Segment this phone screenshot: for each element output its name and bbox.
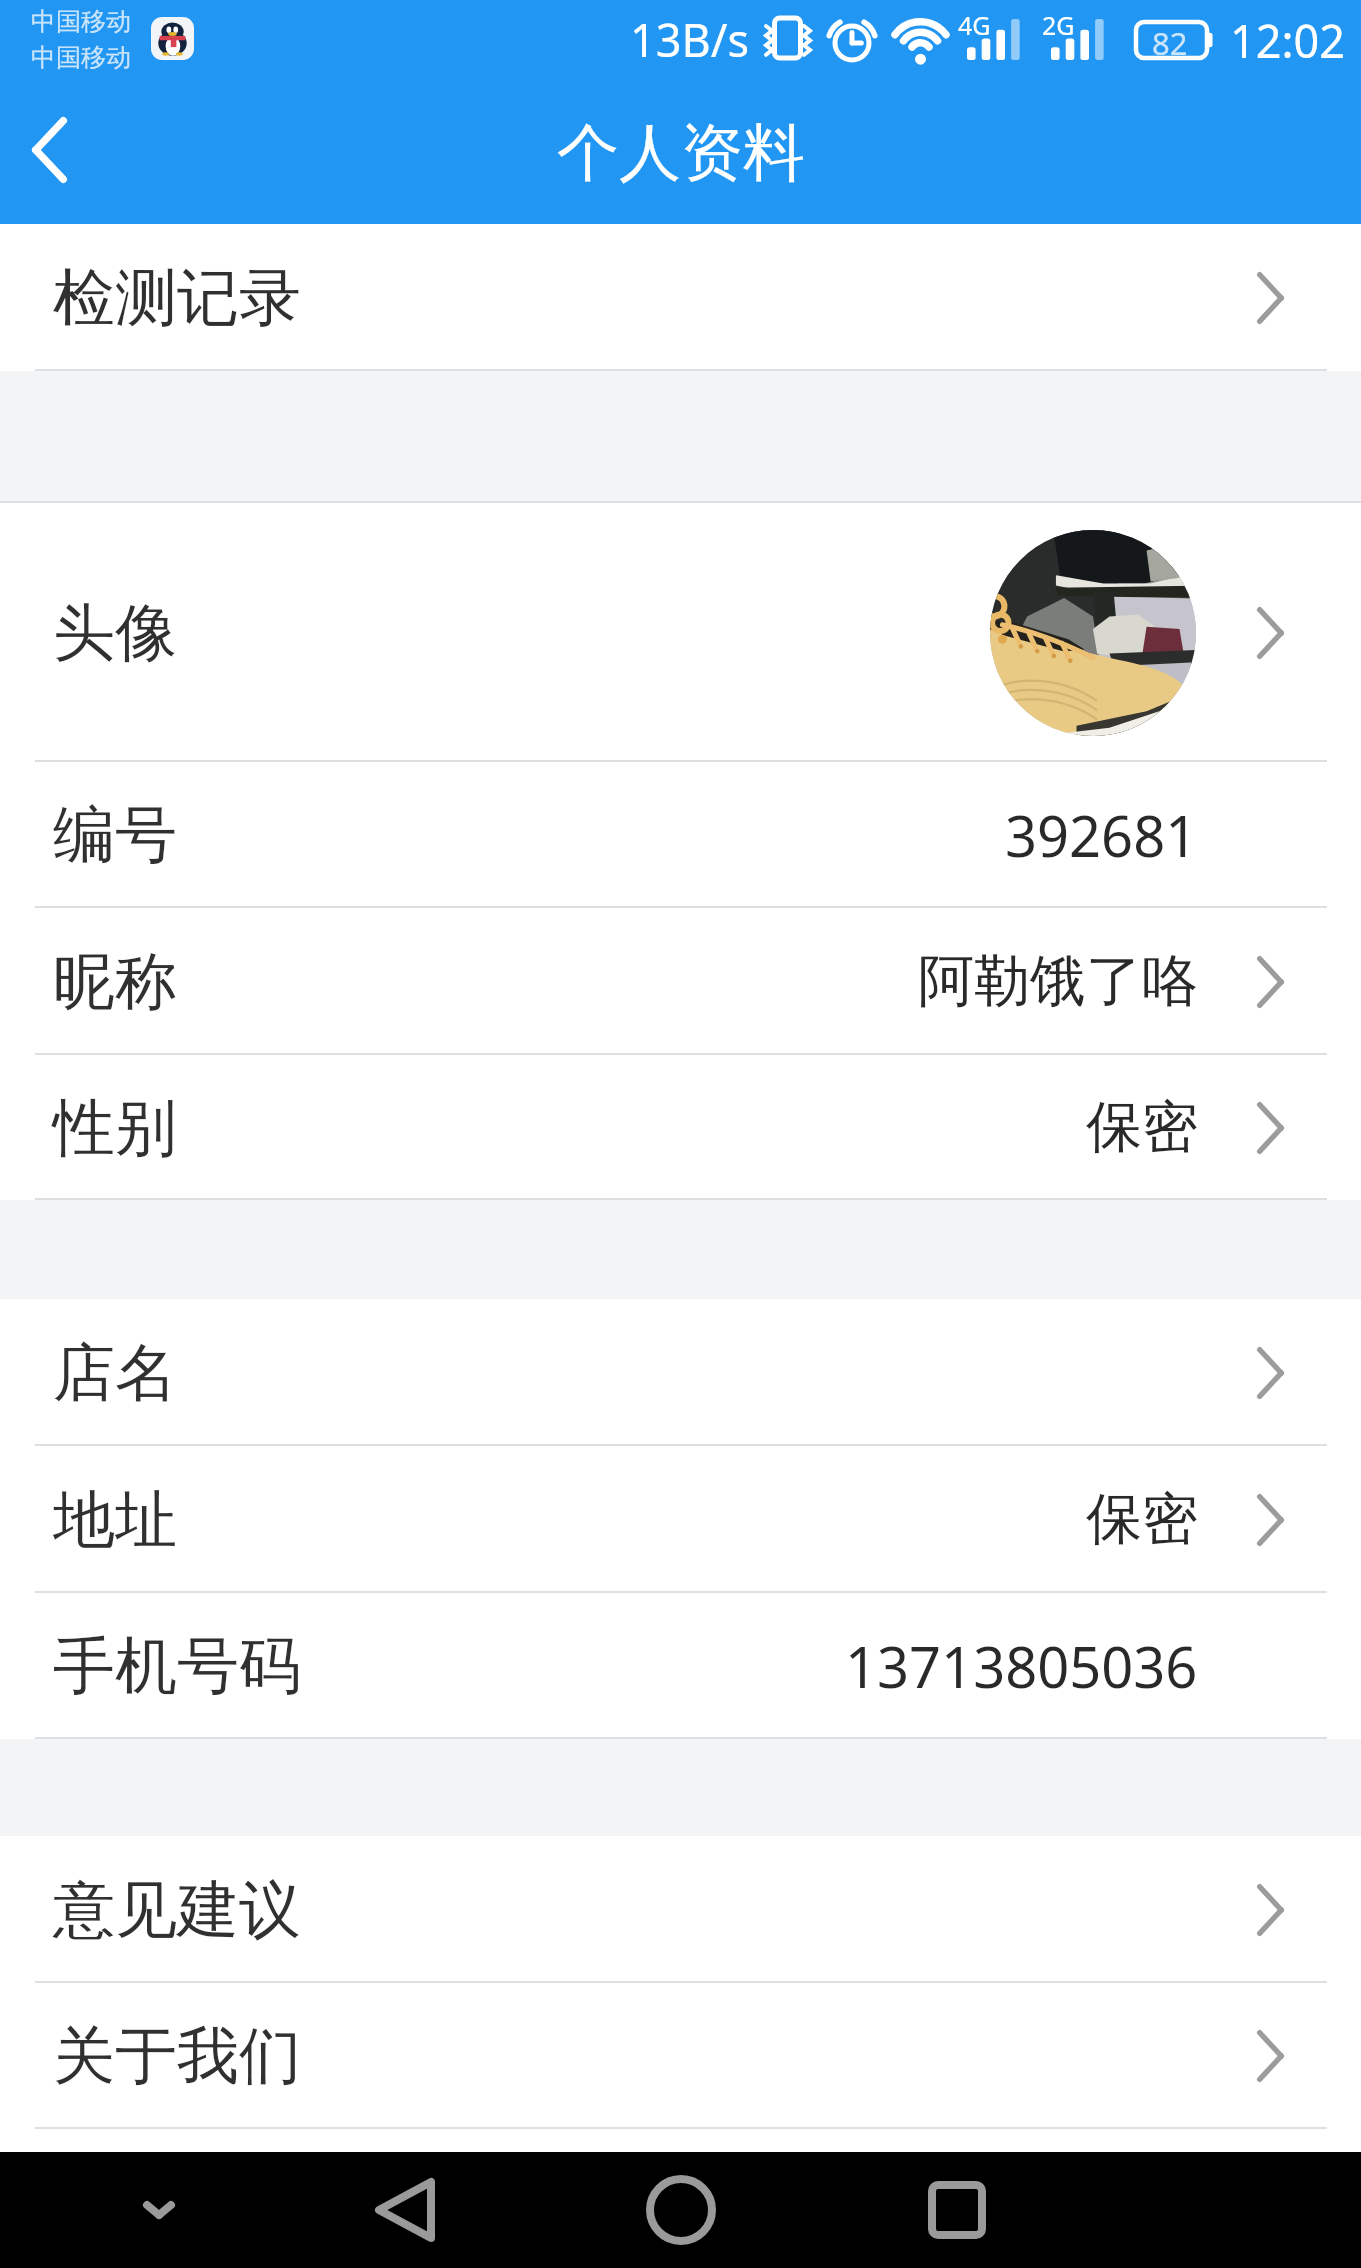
button[interactable]: 检测记录 [0, 224, 1361, 371]
button[interactable]: Recents [912, 2165, 1002, 2255]
staticText: 中国移动 [31, 6, 131, 37]
button[interactable]: 店名 [0, 1299, 1361, 1446]
staticText: 昵称 [53, 943, 177, 1021]
button[interactable]: Back [360, 2165, 450, 2255]
staticText: 性别 [53, 1089, 177, 1167]
staticText: 检测记录 [53, 259, 301, 337]
staticText: 12:02 [1230, 10, 1346, 71]
staticText: 392681 [1005, 797, 1198, 873]
button[interactable]: 头像 [0, 503, 1361, 762]
staticText: 82 [1152, 22, 1188, 58]
staticText: 13713805036 [845, 1628, 1198, 1704]
button[interactable]: 地址 [0, 1446, 1361, 1593]
staticText: 意见建议 [53, 1871, 301, 1949]
button[interactable]: 关于我们 [0, 1983, 1361, 2129]
button[interactable]: 手机号码 [0, 1593, 1361, 1739]
staticText: 2G [1042, 8, 1075, 42]
staticText: 保密 [1086, 1484, 1198, 1555]
staticText: 个人资料 [557, 114, 805, 192]
staticText: 关于我们 [53, 2017, 301, 2095]
button[interactable]: 意见建议 [0, 1836, 1361, 1983]
staticText: 中国移动 [31, 42, 131, 73]
button[interactable]: Back [0, 90, 116, 224]
button[interactable]: 昵称 [0, 908, 1361, 1055]
button[interactable]: 编号 [0, 762, 1361, 908]
staticText: 保密 [1086, 1092, 1198, 1163]
button[interactable]: Home [636, 2165, 726, 2255]
staticText: 地址 [53, 1481, 177, 1559]
staticText: 店名 [53, 1334, 177, 1412]
button[interactable]: 性别 [0, 1055, 1361, 1200]
button[interactable]: Hide keyboard [114, 2165, 204, 2255]
staticText: 4G [958, 8, 991, 42]
staticText: 编号 [53, 796, 177, 874]
staticText: 手机号码 [53, 1627, 301, 1705]
staticText: 13B/s [630, 9, 750, 70]
staticText: 头像 [53, 594, 177, 672]
staticText: 阿勒饿了咯 [918, 946, 1198, 1017]
